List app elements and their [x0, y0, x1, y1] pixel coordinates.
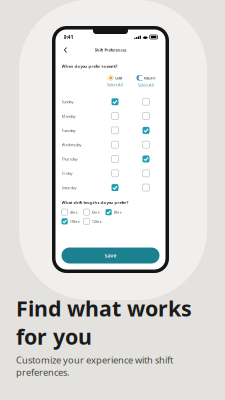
staticText: Select All — [138, 82, 154, 88]
staticText: Thursday — [61, 156, 77, 162]
button[interactable]: Tuesday night — [132, 123, 159, 137]
staticText: What shift lengths do you prefer? — [61, 200, 128, 205]
button[interactable]: Wednesday day — [97, 138, 132, 152]
staticText: DAY — [115, 75, 122, 81]
staticText: 6hrs — [92, 209, 100, 215]
button[interactable]: Saturday night — [132, 181, 159, 195]
staticText: Shift Preferences — [94, 47, 126, 53]
staticText: NIGHT — [144, 75, 156, 81]
button[interactable]: Saturday day — [97, 181, 132, 195]
button[interactable]: Sunday night — [132, 95, 159, 109]
staticText: When do you prefer to work? — [61, 63, 117, 69]
staticText: Select All — [107, 82, 123, 87]
button[interactable]: Monday day — [97, 109, 132, 123]
staticText: Tuesday — [61, 128, 75, 133]
staticText: Save — [104, 252, 116, 259]
button[interactable]: Thursday day — [97, 152, 132, 166]
button[interactable]: 6hrs — [83, 209, 105, 215]
button[interactable]: 12hrs — [83, 218, 105, 224]
button[interactable]: Select All — [107, 82, 123, 87]
button[interactable]: Friday night — [132, 166, 159, 180]
staticText: 10hrs — [70, 219, 80, 224]
button[interactable]: 8hrs — [105, 209, 127, 215]
staticText: Customize your experience with shift pre… — [16, 354, 173, 378]
staticText: Find what works for you — [16, 294, 192, 351]
staticText: 12hrs — [92, 219, 102, 224]
button[interactable]: Wednesday night — [132, 138, 159, 152]
staticText: 8hrs — [114, 209, 122, 215]
button[interactable]: Tuesday day — [97, 123, 132, 137]
button[interactable]: 10hrs — [61, 218, 83, 224]
staticText: Saturday — [61, 185, 76, 190]
button[interactable]: Monday night — [132, 109, 159, 123]
button[interactable]: 4hrs — [61, 209, 83, 215]
staticText: 4hrs — [70, 209, 78, 215]
button[interactable]: Save — [61, 247, 159, 263]
staticText: Sunday — [61, 99, 73, 104]
button[interactable]: Back — [60, 44, 70, 55]
staticText: Friday — [61, 171, 72, 176]
staticText: 9:41 — [63, 33, 73, 41]
button[interactable]: Thursday night — [132, 152, 159, 166]
button[interactable]: Friday day — [97, 166, 132, 180]
staticText: Wednesday — [61, 142, 81, 147]
button[interactable]: Sunday day — [97, 95, 132, 109]
button[interactable]: Select All — [138, 82, 154, 88]
staticText: Monday — [61, 113, 75, 119]
